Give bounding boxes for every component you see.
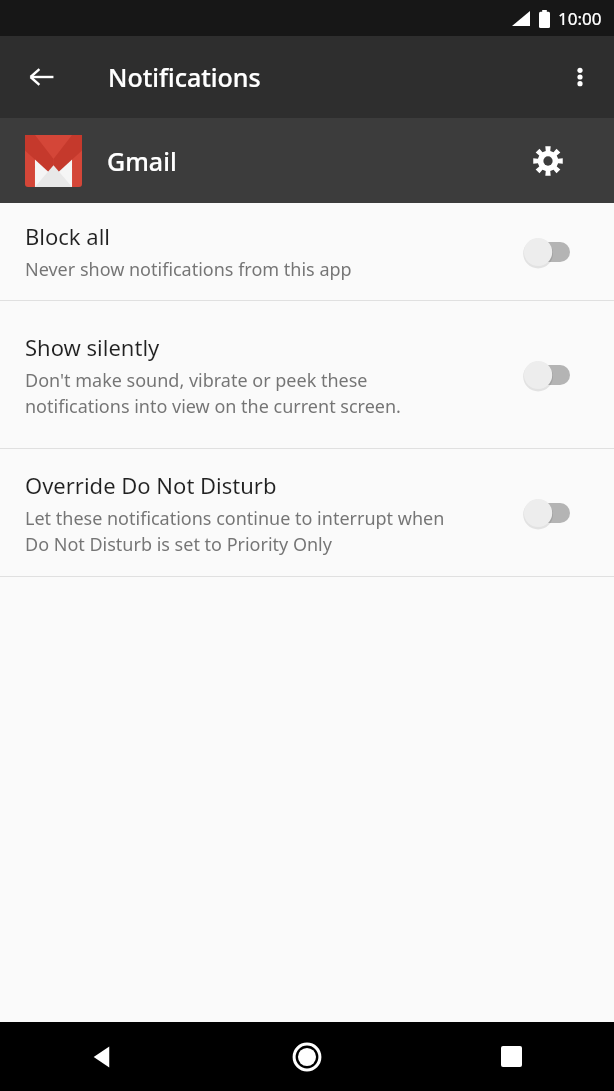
staticText: Gmail: [107, 144, 177, 178]
button[interactable]: Show silently: [0, 301, 614, 448]
staticText: Block all: [25, 221, 111, 251]
staticText: 10:00: [558, 7, 602, 30]
button[interactable]: Block all: [521, 226, 573, 278]
button[interactable]: Show silently: [521, 349, 573, 401]
button[interactable]: More options: [556, 53, 604, 101]
staticText: Let these notifications continue to inte…: [25, 506, 445, 556]
staticText: Override Do Not Disturb: [25, 470, 277, 500]
button[interactable]: Block all: [0, 203, 614, 300]
button[interactable]: Override Do Not Disturb: [0, 449, 614, 576]
button[interactable]: Back: [0, 1022, 204, 1091]
staticText: Don't make sound, vibrate or peek these …: [25, 368, 401, 418]
button[interactable]: Back: [18, 53, 66, 101]
staticText: Notifications: [108, 60, 261, 94]
button[interactable]: Override Do Not Disturb: [521, 487, 573, 539]
staticText: Show silently: [25, 332, 160, 362]
button[interactable]: Recent apps: [409, 1022, 614, 1091]
button[interactable]: Home: [204, 1022, 409, 1091]
button[interactable]: Settings: [524, 137, 572, 185]
staticText: Never show notifications from this app: [25, 257, 352, 282]
